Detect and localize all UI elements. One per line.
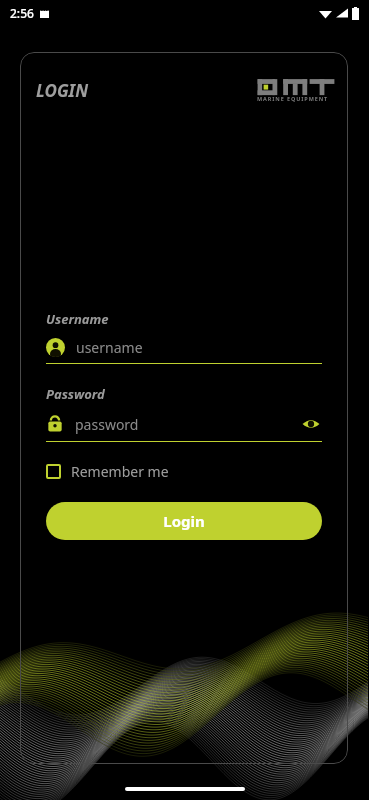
button[interactable]: Login xyxy=(46,502,322,540)
staticText: Remember me xyxy=(71,462,169,481)
staticText: MARINE EQUIPMENT xyxy=(257,95,329,102)
button[interactable]: Remember me xyxy=(46,462,169,481)
staticText: username xyxy=(76,338,143,357)
staticText: Login xyxy=(163,511,205,531)
button[interactable]: password xyxy=(46,413,322,435)
staticText: LOGIN xyxy=(36,79,89,102)
button[interactable]: Show password xyxy=(300,413,322,435)
staticText: 2:56 xyxy=(10,5,34,21)
button[interactable]: username xyxy=(46,338,322,357)
staticText: Username xyxy=(46,310,109,328)
staticText: Password xyxy=(46,385,105,403)
staticText: password xyxy=(75,415,139,434)
